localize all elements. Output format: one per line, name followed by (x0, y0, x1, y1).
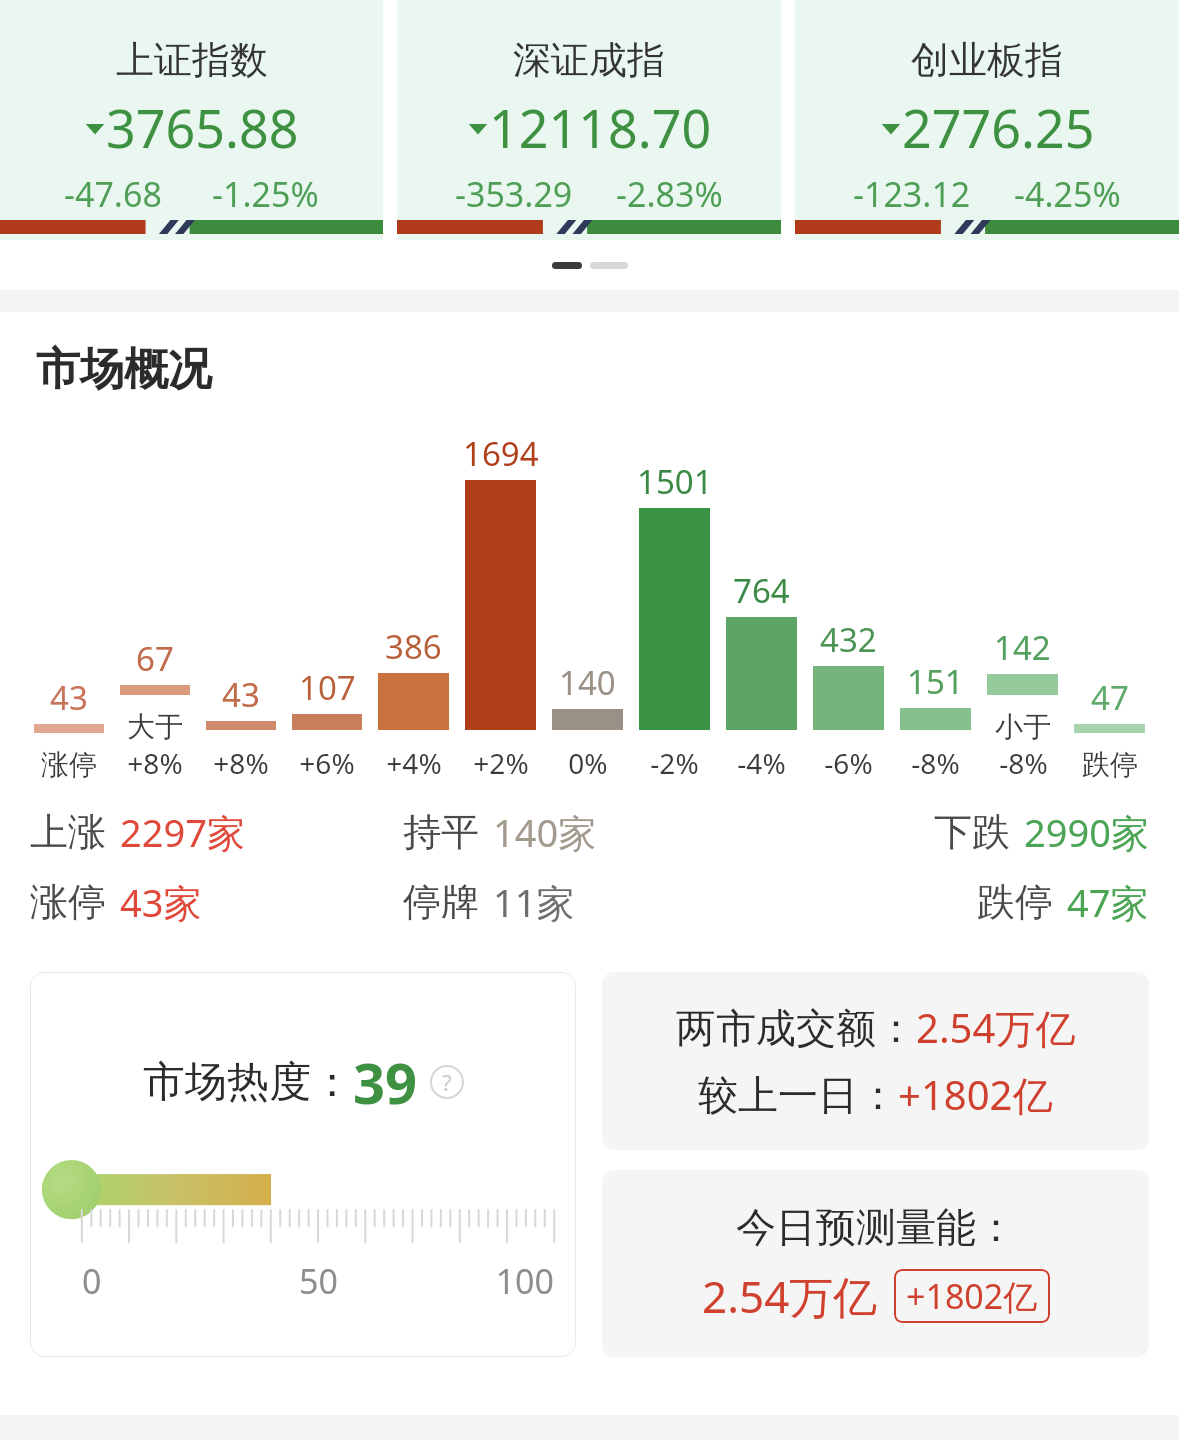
staticText: 140家 (493, 806, 597, 858)
staticText: +8% (127, 744, 183, 782)
staticText: 43 (222, 672, 260, 717)
staticText: -6% (824, 744, 873, 782)
button[interactable]: 432 (805, 617, 892, 782)
staticText: 1501 (637, 459, 713, 504)
button[interactable]: 1694 (457, 431, 544, 782)
staticText: 1694 (463, 431, 539, 476)
staticText: -1.25% (212, 171, 319, 217)
staticText: 上涨 (30, 808, 106, 856)
button[interactable]: 47 (1066, 675, 1153, 782)
button[interactable]: 深证成指 (397, 0, 781, 240)
staticText: 停牌 (403, 878, 479, 926)
button[interactable]: 386 (370, 624, 457, 782)
staticText: -123.12 (853, 171, 971, 217)
staticText: +8% (213, 744, 269, 782)
button[interactable]: 142 (979, 625, 1066, 782)
button[interactable]: 140 (544, 660, 631, 782)
staticText: 47家 (1067, 876, 1149, 928)
staticText: 142 (994, 625, 1051, 670)
staticText: -4.25% (1014, 171, 1121, 217)
staticText: -353.29 (455, 171, 573, 217)
staticText: +2% (473, 744, 529, 782)
staticText: 107 (299, 665, 356, 710)
staticText: 67 (136, 636, 174, 681)
staticText: 151 (907, 659, 964, 704)
staticText: 47 (1091, 675, 1129, 720)
staticText: 涨停 (41, 747, 97, 782)
staticText: -47.68 (64, 171, 162, 217)
staticText: 0% (568, 744, 608, 782)
button[interactable]: 67 (112, 636, 198, 782)
staticText: 0 (82, 1258, 240, 1304)
staticText: 市场概况 (36, 342, 212, 397)
staticText: 39 (353, 1044, 418, 1120)
staticText: 大于 (127, 709, 183, 744)
button[interactable]: 43 (198, 672, 284, 782)
staticText: 两市成交额： (676, 1003, 916, 1053)
staticText: -8% (999, 744, 1048, 782)
staticText: 下跌 (934, 808, 1010, 856)
staticText: 市场热度： (143, 1056, 353, 1109)
staticText: -4% (737, 744, 786, 782)
button[interactable]: 创业板指 (795, 0, 1179, 240)
button[interactable]: 市场热度： (30, 972, 576, 1357)
staticText: 12118.70 (489, 92, 712, 163)
staticText: 深证成指 (513, 36, 665, 84)
button[interactable]: 今日预测量能： (602, 1170, 1149, 1357)
staticText: +1802亿 (898, 1067, 1053, 1122)
staticText: 43家 (120, 876, 202, 928)
staticText: ? (442, 1067, 452, 1097)
staticText: 432 (820, 617, 877, 662)
button[interactable]: 上证指数 (0, 0, 383, 240)
staticText: 386 (385, 624, 442, 669)
staticText: 跌停 (977, 878, 1053, 926)
button[interactable]: 1501 (631, 459, 718, 782)
staticText: 764 (733, 568, 790, 613)
staticText: 2776.25 (902, 92, 1095, 163)
staticText: 3765.88 (106, 92, 299, 163)
staticText: 较上一日： (698, 1070, 898, 1120)
staticText: 上证指数 (116, 36, 268, 84)
staticText: 43 (50, 675, 88, 720)
button[interactable]: 151 (892, 659, 979, 782)
staticText: +6% (299, 744, 355, 782)
staticText: +1802亿 (906, 1273, 1038, 1319)
staticText: 跌停 (1082, 747, 1138, 782)
staticText: 持平 (403, 808, 479, 856)
button[interactable]: 764 (718, 568, 805, 782)
staticText: 小于 (995, 709, 1051, 744)
button[interactable]: 43 (26, 675, 112, 782)
staticText: 涨停 (30, 878, 106, 926)
staticText: 2.54万亿 (702, 1266, 878, 1326)
staticText: -2% (650, 744, 699, 782)
button[interactable]: 说明 (430, 1065, 464, 1099)
staticText: 2297家 (120, 806, 245, 858)
staticText: 50 (240, 1258, 397, 1304)
staticText: 2990家 (1024, 806, 1149, 858)
staticText: -2.83% (616, 171, 723, 217)
button[interactable]: 两市成交额： (602, 972, 1149, 1150)
staticText: 100 (397, 1258, 554, 1304)
button[interactable]: 107 (284, 665, 370, 782)
staticText: 今日预测量能： (736, 1202, 1016, 1252)
staticText: 140 (559, 660, 616, 705)
staticText: -8% (911, 744, 960, 782)
staticText: 创业板指 (911, 36, 1063, 84)
staticText: 11家 (493, 876, 575, 928)
staticText: 2.54万亿 (916, 1000, 1076, 1055)
staticText: +4% (386, 744, 442, 782)
